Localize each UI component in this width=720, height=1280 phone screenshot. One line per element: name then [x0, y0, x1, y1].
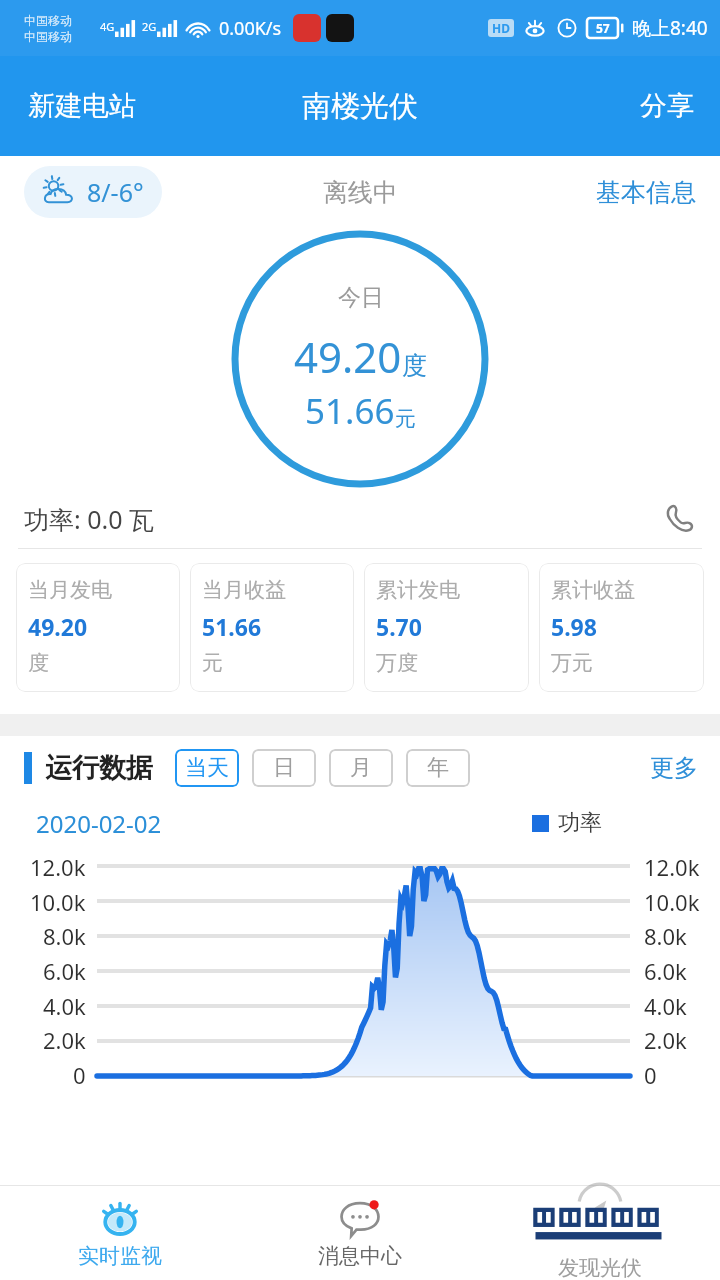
staticText: 49.20 — [294, 328, 402, 385]
staticText: 4G — [100, 19, 115, 34]
button[interactable]: 当月发电 — [16, 563, 180, 692]
staticText: 年 — [427, 754, 449, 782]
staticText: 8/-6° — [87, 175, 144, 209]
staticText: 0 — [73, 1060, 86, 1090]
staticText: 离线中 — [323, 177, 398, 208]
staticText: 51.66 — [202, 611, 262, 642]
button[interactable]: 分享 — [622, 75, 720, 137]
staticText: 基本信息 — [596, 177, 696, 208]
staticText: 当天 — [185, 754, 229, 782]
staticText: 中国移动 — [24, 13, 72, 28]
staticText: 5.98 — [551, 611, 597, 642]
staticText: HD — [492, 20, 510, 36]
staticText: 累计发电 — [376, 577, 460, 603]
staticText: 49.20 — [28, 611, 88, 642]
staticText: 2G — [142, 19, 157, 34]
staticText: 2.0k — [43, 1025, 86, 1055]
staticText: 8.0k — [43, 921, 86, 951]
staticText: 12.0k — [30, 852, 86, 882]
button[interactable]: 发现光伏 — [480, 1186, 720, 1280]
staticText: 中国移动 — [24, 29, 72, 44]
staticText: 度 — [402, 350, 427, 381]
staticText: 消息中心 — [318, 1243, 402, 1269]
button[interactable]: 实时监视 — [0, 1186, 240, 1280]
other: 发现光伏 — [525, 1186, 675, 1250]
staticText: 新建电站 — [28, 89, 136, 123]
staticText: 51.66 — [305, 387, 395, 435]
staticText: 功率 — [558, 809, 602, 837]
staticText: 当月收益 — [202, 577, 286, 603]
staticText: 元 — [395, 406, 416, 432]
staticText: 实时监视 — [78, 1243, 162, 1269]
button[interactable]: 日 — [252, 749, 316, 787]
staticText: 6.0k — [43, 956, 86, 986]
button[interactable]: 月 — [329, 749, 393, 787]
staticText: 发现光伏 — [558, 1255, 642, 1280]
staticText: 57 — [596, 20, 610, 36]
staticText: 0 — [644, 1060, 657, 1090]
button[interactable]: 8/-6° — [24, 166, 162, 218]
staticText: 万度 — [376, 650, 418, 676]
staticText: 晚上8:40 — [632, 15, 708, 41]
staticText: 分享 — [640, 89, 694, 123]
button[interactable]: 累计收益 — [539, 563, 704, 692]
staticText: 4.0k — [43, 991, 86, 1021]
staticText: 功率: 0.0 瓦 — [24, 502, 155, 536]
button[interactable]: 当天 — [175, 749, 239, 787]
button[interactable]: 年 — [406, 749, 470, 787]
staticText: 12.0k — [644, 852, 700, 882]
button[interactable]: 当月收益 — [190, 563, 354, 692]
staticText: 累计收益 — [551, 577, 635, 603]
staticText: 南楼光伏 — [302, 88, 418, 125]
staticText: 10.0k — [644, 887, 700, 917]
staticText: 10.0k — [30, 887, 86, 917]
button[interactable]: 消息中心 — [240, 1186, 480, 1280]
staticText: 元 — [202, 650, 223, 676]
button[interactable]: Call support — [656, 496, 702, 542]
staticText: 运行数据 — [45, 751, 153, 785]
button[interactable]: 基本信息 — [580, 165, 720, 220]
staticText: 月 — [350, 754, 372, 782]
staticText: 万元 — [551, 650, 593, 676]
staticText: 4.0k — [644, 991, 687, 1021]
button[interactable]: 新建电站 — [0, 75, 154, 137]
staticText: 2.0k — [644, 1025, 687, 1055]
staticText: 5.70 — [376, 611, 422, 642]
staticText: 8.0k — [644, 921, 687, 951]
button[interactable]: 更多 — [646, 745, 702, 791]
staticText: 当月发电 — [28, 577, 112, 603]
staticText: 0.00K/s — [219, 16, 282, 41]
staticText: 2020-02-02 — [36, 807, 162, 840]
staticText: 日 — [273, 754, 295, 782]
staticText: 今日 — [338, 283, 384, 312]
staticText: 度 — [28, 650, 49, 676]
staticText: 更多 — [650, 753, 698, 783]
button[interactable]: 累计发电 — [364, 563, 529, 692]
staticText: 6.0k — [644, 956, 687, 986]
